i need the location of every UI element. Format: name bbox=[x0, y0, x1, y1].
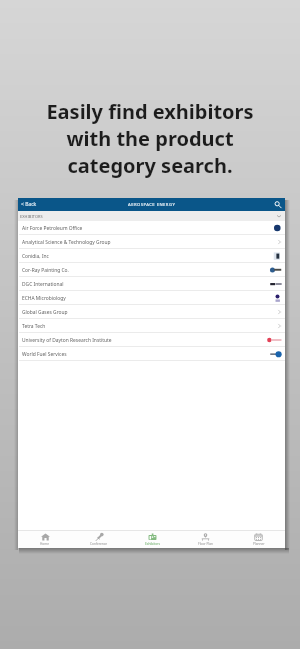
staticText: Easily find exhibitors bbox=[46, 98, 254, 125]
staticText: Conidia, Inc bbox=[22, 253, 49, 260]
button[interactable]: Global Gases Group bbox=[18, 305, 285, 319]
button[interactable]: Planner bbox=[232, 531, 285, 548]
staticText: Analytical Science & Technology Group bbox=[22, 239, 111, 246]
staticText: University of Dayton Research Institute bbox=[22, 337, 112, 344]
button[interactable]: DGC International bbox=[18, 277, 285, 291]
staticText: World Fuel Services bbox=[22, 351, 67, 358]
button[interactable]: Analytical Science & Technology Group bbox=[18, 235, 285, 249]
staticText: EXHIBITORS bbox=[20, 214, 43, 219]
button[interactable]: World Fuel Services bbox=[18, 347, 285, 361]
button[interactable]: Home bbox=[18, 531, 72, 548]
staticText: with the product bbox=[66, 125, 234, 152]
staticText: Cor-Ray Painting Co. bbox=[22, 267, 69, 274]
staticText: Planner bbox=[253, 542, 265, 546]
staticText: AEROSPACE ENERGY bbox=[128, 202, 176, 208]
button[interactable]: Cor-Ray Painting Co. bbox=[18, 263, 285, 277]
staticText: Conference bbox=[90, 542, 108, 546]
staticText: Global Gases Group bbox=[22, 309, 68, 316]
button[interactable]: Conidia, Inc bbox=[18, 249, 285, 263]
staticText: ECHA Microbiology bbox=[22, 295, 66, 302]
button[interactable]: Search bbox=[273, 200, 282, 209]
staticText: Floor Plan bbox=[198, 542, 213, 546]
button[interactable]: Tetra Tech bbox=[18, 319, 285, 333]
button[interactable]: Exhibitors bbox=[126, 531, 179, 548]
button[interactable]: < Back bbox=[21, 201, 37, 208]
staticText: Home bbox=[40, 542, 50, 546]
button[interactable]: ECHA Microbiology bbox=[18, 291, 285, 305]
staticText: Air Force Petroleum Office bbox=[22, 225, 83, 232]
button[interactable]: Air Force Petroleum Office bbox=[18, 221, 285, 235]
staticText: category search. bbox=[67, 152, 233, 179]
staticText: DGC International bbox=[22, 281, 64, 288]
staticText: Exhibitors bbox=[145, 542, 160, 546]
staticText: Tetra Tech bbox=[22, 323, 46, 330]
button[interactable]: University of Dayton Research Institute bbox=[18, 333, 285, 347]
button[interactable]: Conference bbox=[72, 531, 126, 548]
button[interactable]: Floor Plan bbox=[179, 531, 232, 548]
